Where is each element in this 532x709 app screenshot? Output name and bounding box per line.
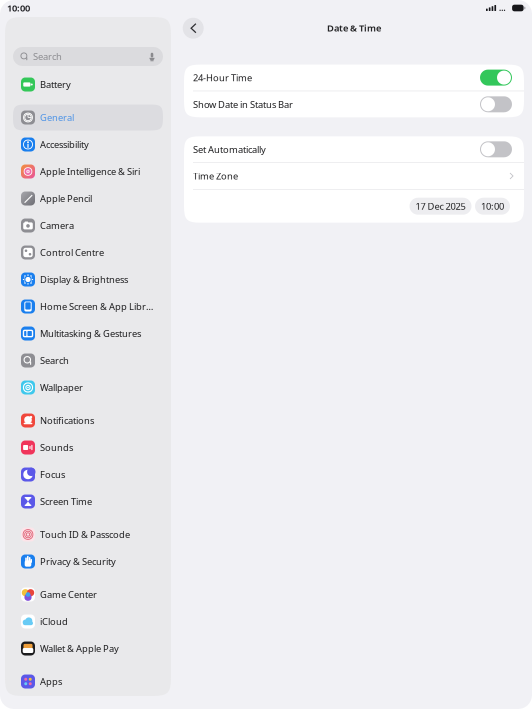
button[interactable]: Apple Pencil	[5, 185, 171, 212]
staticText: Sounds	[40, 441, 73, 454]
staticText: Display & Brightness	[40, 273, 128, 286]
staticText: Search	[40, 354, 69, 367]
button[interactable]: Touch ID & Passcode	[5, 521, 171, 548]
button[interactable]: Camera	[5, 212, 171, 239]
button[interactable]: General	[5, 104, 171, 131]
button[interactable]: Game Center	[5, 581, 171, 608]
staticText: iCloud	[40, 615, 68, 628]
button[interactable]: Show Date in Status Bar	[184, 91, 524, 117]
button[interactable]: iCloud	[5, 608, 171, 635]
staticText: 10:00	[7, 2, 30, 14]
button[interactable]: Sounds	[5, 434, 171, 461]
button[interactable]: Control Centre	[5, 239, 171, 266]
staticText: Date & Time	[327, 22, 381, 34]
button[interactable]: Display & Brightness	[5, 266, 171, 293]
button[interactable]: 17 Dec 2025	[409, 198, 471, 215]
staticText: 17 Dec 2025	[415, 200, 465, 212]
button[interactable]: Multitasking & Gestures	[5, 320, 171, 347]
button[interactable]: Apple Intelligence & Siri	[5, 158, 171, 185]
staticText: 10:00	[481, 200, 504, 212]
button[interactable]: Accessibility	[5, 131, 171, 158]
staticText: Touch ID & Passcode	[40, 528, 130, 541]
staticText: Camera	[40, 219, 74, 232]
staticText: Show Date in Status Bar	[193, 98, 293, 110]
button[interactable]: Set Automatically	[184, 136, 524, 162]
staticText: Time Zone	[193, 170, 238, 182]
staticText: Accessibility	[40, 138, 89, 151]
staticText: General	[40, 111, 74, 124]
button[interactable]: 24-Hour Time	[184, 65, 524, 91]
button[interactable]: Home Screen & App Library	[5, 293, 171, 320]
staticText: Apple Pencil	[40, 192, 92, 205]
staticText: Focus	[40, 468, 65, 481]
staticText: Control Centre	[40, 246, 104, 259]
staticText: Privacy & Security	[40, 555, 116, 568]
button[interactable]: Focus	[5, 461, 171, 488]
staticText: Wallet & Apple Pay	[40, 642, 119, 655]
button[interactable]: Privacy & Security	[5, 548, 171, 575]
staticText: Multitasking & Gestures	[40, 327, 141, 340]
staticText: Screen Time	[40, 495, 92, 508]
button[interactable]: Wallpaper	[5, 374, 171, 401]
button[interactable]: Apps	[5, 668, 171, 695]
button[interactable]: 10:00	[475, 198, 510, 215]
staticText: 24-Hour Time	[193, 71, 252, 84]
staticText: Wallpaper	[40, 381, 83, 394]
staticText: Search	[33, 50, 62, 63]
staticText: Apps	[40, 675, 62, 688]
staticText: Apple Intelligence & Siri	[40, 165, 140, 178]
button[interactable]: Search	[5, 347, 171, 374]
staticText: Home Screen & App Library	[40, 300, 157, 313]
staticText: Set Automatically	[193, 143, 266, 155]
button[interactable]: Battery	[5, 71, 171, 98]
button[interactable]: Back	[180, 15, 206, 41]
button[interactable]: Screen Time	[5, 488, 171, 515]
staticText: 5G	[499, 3, 508, 13]
button[interactable]: Wallet & Apple Pay	[5, 635, 171, 662]
staticText: Game Center	[40, 588, 97, 601]
button[interactable]: Time Zone	[184, 163, 524, 189]
button[interactable]: Search	[5, 47, 171, 66]
staticText: Battery	[40, 78, 71, 91]
staticText: Notifications	[40, 414, 94, 427]
button[interactable]: Notifications	[5, 407, 171, 434]
